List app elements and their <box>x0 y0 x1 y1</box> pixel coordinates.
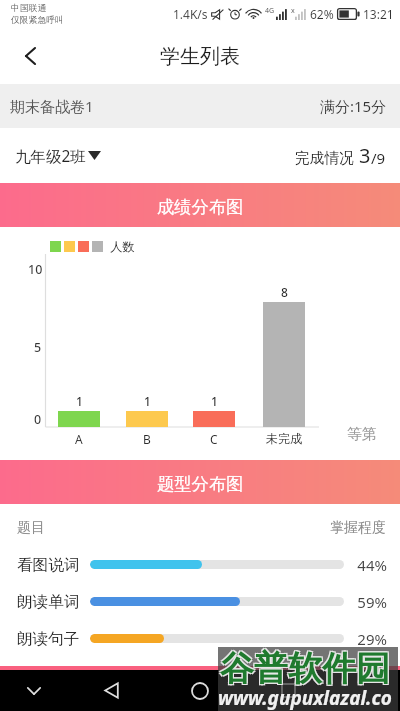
staticText: 29% <box>353 629 387 649</box>
staticText: 1 <box>211 393 218 409</box>
staticText: 62% <box>310 6 334 22</box>
staticText: 题型分布图 <box>157 473 244 495</box>
staticText: 5 <box>34 339 42 356</box>
staticText: 成绩分布图 <box>157 196 244 218</box>
staticText: 谷普软件园 <box>220 647 390 690</box>
button[interactable]: Back <box>4 30 56 82</box>
staticText: 59% <box>353 592 387 612</box>
staticText: 0 <box>34 411 42 428</box>
staticText: 谷普软件园 <box>221 648 391 691</box>
button[interactable]: 九年级2班 <box>15 145 101 166</box>
staticText: 未完成 <box>266 431 302 446</box>
button[interactable]: Recent apps <box>267 670 309 711</box>
button[interactable]: Hide keyboard <box>13 670 54 711</box>
button[interactable]: Home <box>179 670 221 711</box>
staticText: 朗读句子 <box>17 629 90 649</box>
staticText: 谷普软件园 <box>219 648 389 691</box>
staticText: 谷普软件园 <box>221 646 391 689</box>
staticText: 13:21 <box>363 6 394 22</box>
staticText: 朗读单词 <box>17 592 90 612</box>
button[interactable]: 朗读单词 <box>0 583 400 620</box>
staticText: 4G <box>265 6 275 16</box>
staticText: www.gupuxlazal.com <box>218 685 398 711</box>
staticText: 10 <box>28 261 43 278</box>
staticText: 期末备战卷1 <box>10 96 94 116</box>
staticText: 谷普软件园 <box>219 646 389 689</box>
staticText: 等第 <box>347 425 377 444</box>
staticText: 1 <box>76 393 83 409</box>
staticText: 九年级2班 <box>15 145 86 166</box>
button[interactable]: 朗读句子 <box>0 620 400 657</box>
staticText: 1.4K/s <box>173 6 208 22</box>
staticText: /9 <box>371 148 386 168</box>
staticText: 44% <box>353 555 387 575</box>
staticText: 学生列表 <box>160 44 240 69</box>
staticText: 1 <box>144 393 151 409</box>
staticText: 8 <box>281 284 288 300</box>
button[interactable]: 看图说词 <box>0 546 400 583</box>
staticText: 中国联通 <box>11 3 47 14</box>
staticText: x <box>291 6 295 16</box>
staticText: 完成情况 <box>295 149 354 168</box>
button[interactable]: Back <box>90 670 132 711</box>
staticText: 人数 <box>110 239 135 254</box>
staticText: 题目 <box>17 519 45 537</box>
staticText: B <box>143 431 151 447</box>
staticText: A <box>75 431 83 447</box>
staticText: 满分:15分 <box>320 96 387 116</box>
staticText: 看图说词 <box>17 555 90 575</box>
staticText: 掌握程度 <box>330 519 386 537</box>
staticText: C <box>210 431 218 447</box>
staticText: 仅限紧急呼叫 <box>11 15 64 26</box>
staticText: 3 <box>359 142 371 169</box>
